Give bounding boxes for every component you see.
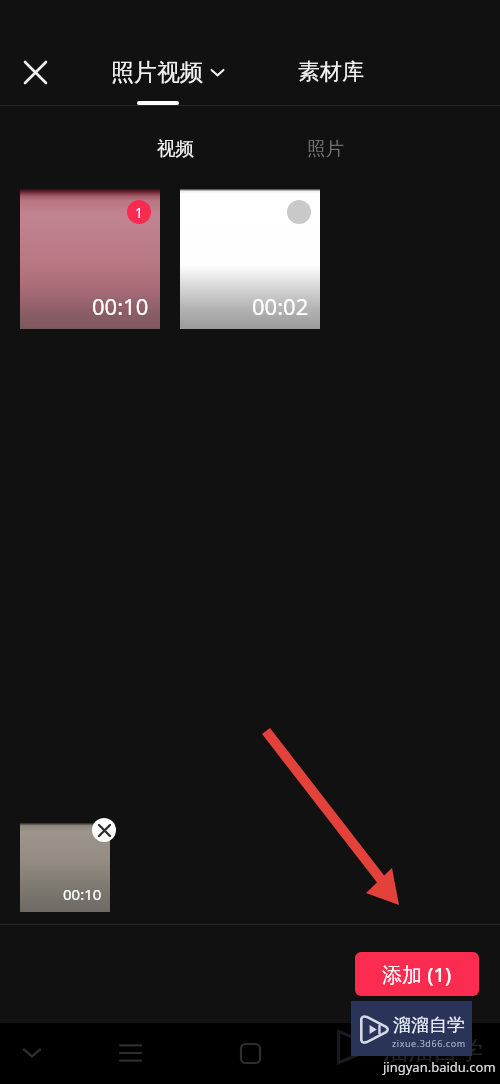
button[interactable]: 00:02 <box>180 189 320 329</box>
button[interactable]: Back <box>10 1031 54 1075</box>
staticText: jingyan.baidu.com <box>383 1058 496 1076</box>
button[interactable]: 素材库 <box>298 52 364 92</box>
button[interactable]: Remove <box>92 818 116 842</box>
staticText: 1 <box>135 203 144 222</box>
button[interactable]: 00:10 <box>20 823 110 912</box>
staticText: 00:10 <box>92 291 149 321</box>
button[interactable]: Close <box>13 50 57 94</box>
staticText: 照片 <box>307 137 344 160</box>
button[interactable]: Recent apps <box>108 1031 152 1075</box>
button[interactable]: 照片视频 <box>111 52 224 92</box>
button[interactable]: 照片 <box>295 129 355 167</box>
staticText: 视频 <box>157 137 194 160</box>
button[interactable]: Home <box>228 1031 272 1075</box>
button[interactable]: Selected <box>127 200 151 224</box>
staticText: 溜溜自学 <box>393 1014 465 1037</box>
button[interactable]: Select <box>287 200 311 224</box>
staticText: zixue.3d66.com <box>392 1037 466 1049</box>
button[interactable]: 视频 <box>145 129 205 167</box>
staticText: 溜溜自学 <box>383 1035 483 1066</box>
staticText: 照片视频 <box>111 58 203 87</box>
button[interactable]: 添加 (1) <box>355 952 479 996</box>
staticText: 添加 (1) <box>382 961 452 988</box>
button[interactable]: 00:10 <box>20 189 160 329</box>
staticText: 00:02 <box>252 291 309 321</box>
staticText: 00:10 <box>63 884 102 904</box>
staticText: 素材库 <box>298 58 364 86</box>
